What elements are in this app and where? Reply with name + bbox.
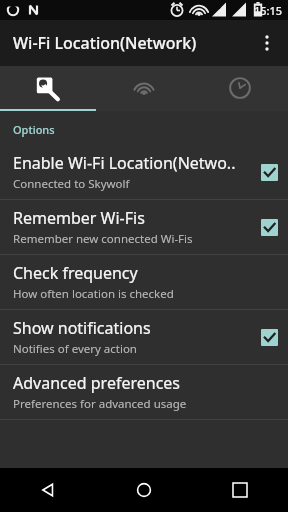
button[interactable]: More options <box>246 22 288 64</box>
button[interactable]: Recent apps <box>218 468 262 512</box>
button[interactable]: Home <box>122 468 166 512</box>
staticText: Show notifications <box>13 317 151 339</box>
button[interactable]: Show notifications <box>0 310 288 364</box>
button[interactable]: Check frequency <box>0 255 288 309</box>
button[interactable]: Checkbox <box>261 164 278 181</box>
staticText: Options <box>13 122 55 137</box>
staticText: Remember new connected Wi-Fis <box>13 231 193 247</box>
button[interactable]: Wi-Fi tab <box>96 66 192 111</box>
staticText: Wi-Fi Location(Network) <box>13 32 197 54</box>
staticText: 15:15 <box>254 3 283 18</box>
button[interactable]: Checkbox <box>261 329 278 346</box>
staticText: Notifies of every action <box>13 341 137 357</box>
button[interactable]: Checkbox <box>261 219 278 236</box>
staticText: Advanced preferences <box>13 372 181 394</box>
staticText: How often location is checked <box>13 286 174 302</box>
staticText: Check frequency <box>13 262 138 284</box>
staticText: Remember Wi-Fis <box>13 207 145 229</box>
button[interactable]: Remember Wi-Fis <box>0 200 288 254</box>
button[interactable]: Back <box>26 468 70 512</box>
button[interactable]: Advanced preferences <box>0 365 288 419</box>
button[interactable]: Options tab <box>0 66 96 111</box>
staticText: Enable Wi-Fi Location(Netwo.. <box>13 152 236 174</box>
button[interactable]: History tab <box>192 66 288 111</box>
staticText: Connected to Skywolf <box>13 176 130 192</box>
button[interactable]: Enable Wi-Fi Location(Netwo.. <box>0 145 288 199</box>
staticText: Preferences for advanced usage <box>13 396 187 412</box>
